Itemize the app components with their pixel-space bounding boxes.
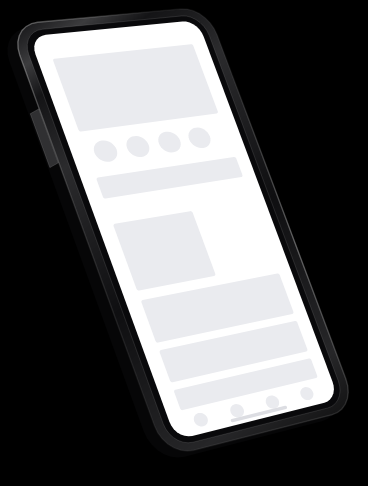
button[interactable]: Phone app preview mockup [0,0,368,486]
